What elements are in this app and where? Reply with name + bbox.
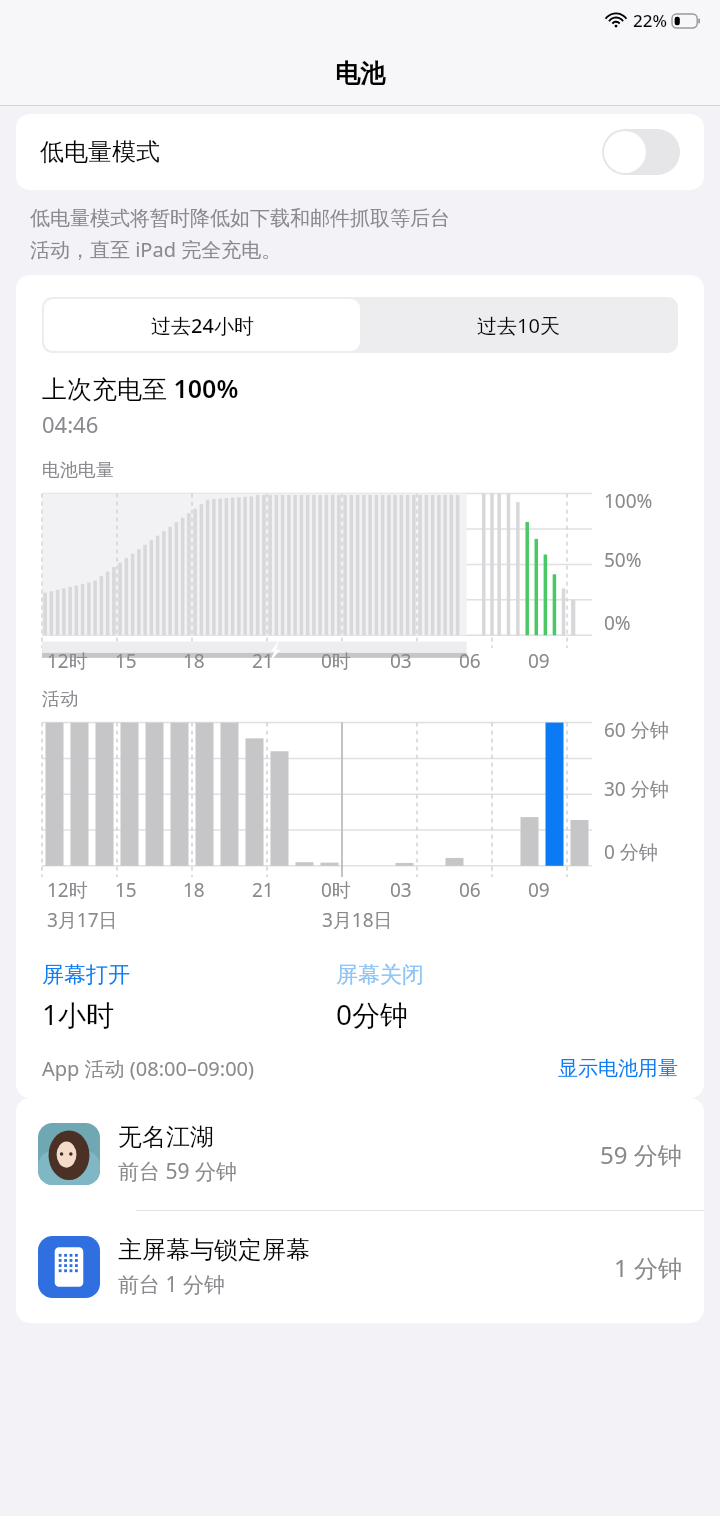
- staticText: 06: [459, 877, 481, 903]
- staticText: 0分钟: [336, 995, 409, 1033]
- button[interactable]: App 活动 (08:00–09:00): [16, 1055, 704, 1092]
- staticText: 21: [252, 877, 274, 903]
- staticText: 3月18日: [322, 907, 393, 933]
- staticText: 上次充电至 100%: [42, 371, 239, 405]
- staticText: 15: [115, 877, 137, 903]
- staticText: 18: [183, 648, 205, 674]
- staticText: 59 分钟: [600, 1138, 682, 1171]
- staticText: 03: [390, 648, 412, 674]
- staticText: 18: [183, 877, 205, 903]
- staticText: 12时: [47, 648, 88, 674]
- staticText: 09: [528, 648, 550, 674]
- staticText: 前台 1 分钟: [118, 1270, 225, 1299]
- staticText: 04:46: [42, 409, 99, 439]
- staticText: App 活动 (08:00–09:00): [42, 1055, 255, 1082]
- staticText: 21: [252, 648, 274, 674]
- staticText: 3月17日: [47, 907, 118, 933]
- staticText: 无名江湖: [118, 1122, 214, 1152]
- staticText: 12时: [47, 877, 88, 903]
- staticText: 09: [528, 877, 550, 903]
- button[interactable]: 过去24小时: [44, 299, 360, 351]
- staticText: 22%: [633, 9, 667, 32]
- staticText: 前台 59 分钟: [118, 1157, 237, 1186]
- staticText: 主屏幕与锁定屏幕: [118, 1235, 310, 1265]
- button[interactable]: 无名江湖: [16, 1098, 704, 1210]
- staticText: 过去10天: [477, 312, 560, 339]
- button[interactable]: 过去10天: [360, 299, 676, 351]
- staticText: 0时: [321, 648, 351, 674]
- staticText: 显示电池用量: [558, 1056, 678, 1081]
- staticText: 100%: [604, 488, 653, 514]
- staticText: 1 分钟: [614, 1251, 682, 1284]
- staticText: 0%: [604, 610, 631, 636]
- staticText: 06: [459, 648, 481, 674]
- staticText: 30 分钟: [604, 776, 669, 802]
- staticText: 0时: [321, 877, 351, 903]
- staticText: 1小时: [42, 995, 115, 1033]
- staticText: 屏幕关闭: [336, 961, 424, 989]
- button[interactable]: 主屏幕与锁定屏幕: [16, 1211, 704, 1323]
- staticText: 过去24小时: [151, 312, 254, 339]
- staticText: 低电量模式: [40, 137, 160, 167]
- staticText: 03: [390, 877, 412, 903]
- staticText: 低电量模式将暂时降低如下载和邮件抓取等后台: [30, 206, 450, 231]
- staticText: 15: [115, 648, 137, 674]
- staticText: 活动，直至 iPad 完全充电。: [30, 236, 282, 263]
- button[interactable]: 低电量模式开关: [602, 129, 680, 175]
- staticText: 屏幕打开: [42, 961, 130, 989]
- button[interactable]: 低电量模式: [16, 114, 704, 190]
- staticText: 50%: [604, 547, 642, 573]
- staticText: 0 分钟: [604, 839, 658, 865]
- staticText: 电池: [335, 58, 385, 89]
- staticText: 电池电量: [42, 459, 114, 482]
- staticText: 活动: [42, 688, 78, 711]
- staticText: 60 分钟: [604, 717, 669, 743]
